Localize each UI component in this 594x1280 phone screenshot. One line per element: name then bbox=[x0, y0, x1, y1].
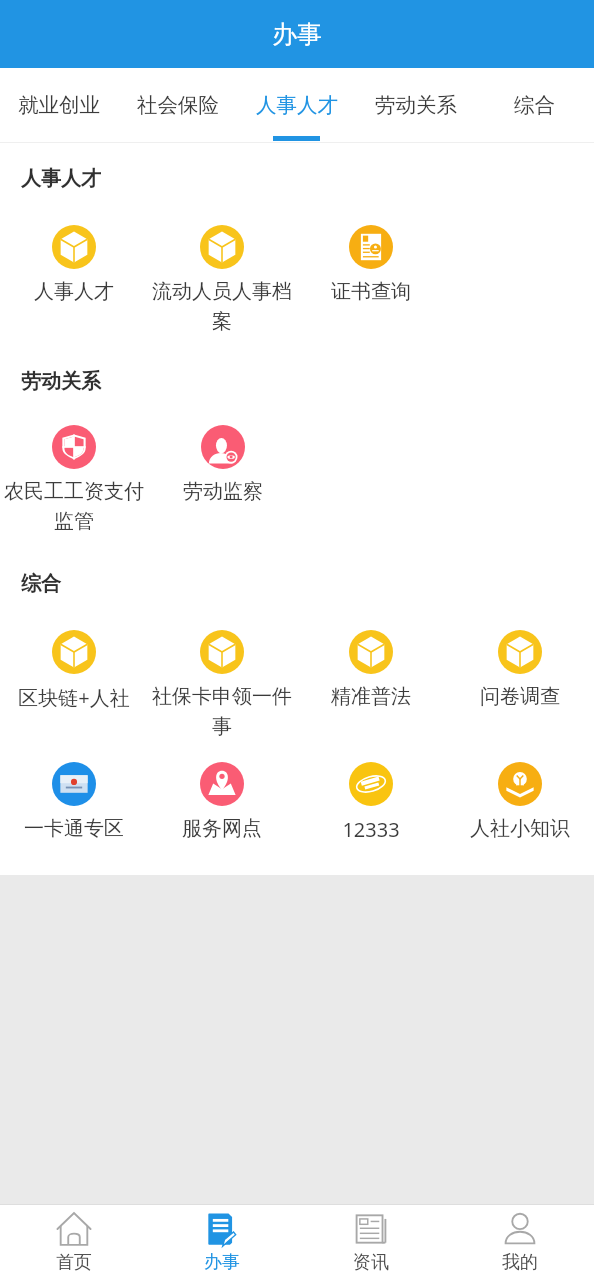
button[interactable]: 就业创业 bbox=[0, 68, 118, 142]
staticText: 劳动关系 bbox=[375, 92, 457, 118]
button[interactable]: 人事人才 bbox=[0, 225, 148, 304]
staticText: 办事 bbox=[204, 1251, 240, 1274]
staticText: 证书查询 bbox=[331, 279, 411, 304]
button[interactable]: 区块链+人社 bbox=[0, 630, 148, 711]
staticText: 流动人员人事档案 bbox=[152, 279, 292, 334]
staticText: 我的 bbox=[502, 1251, 538, 1274]
button[interactable]: 一卡通专区 bbox=[0, 762, 148, 841]
staticText: 社会保险 bbox=[137, 92, 219, 118]
staticText: 劳动监察 bbox=[183, 479, 263, 504]
button[interactable]: 农民工工资支付监管 bbox=[0, 425, 148, 534]
staticText: 综合 bbox=[514, 92, 555, 118]
staticText: 服务网点 bbox=[182, 816, 262, 841]
button[interactable]: 问卷调查 bbox=[445, 630, 594, 709]
staticText: 人事人才 bbox=[21, 166, 101, 191]
staticText: 就业创业 bbox=[18, 92, 100, 118]
staticText: 精准普法 bbox=[331, 684, 411, 709]
button[interactable]: 12333 bbox=[296, 762, 445, 843]
button[interactable]: 流动人员人事档案 bbox=[148, 225, 296, 334]
button[interactable]: 服务网点 bbox=[148, 762, 296, 841]
button[interactable]: 人事人才 bbox=[237, 68, 356, 142]
staticText: 首页 bbox=[56, 1251, 92, 1274]
button[interactable]: 资讯 bbox=[296, 1205, 445, 1280]
button[interactable]: 综合 bbox=[475, 68, 594, 142]
staticText: 劳动关系 bbox=[21, 369, 101, 394]
button[interactable]: 首页 bbox=[0, 1205, 148, 1280]
staticText: 人事人才 bbox=[256, 92, 338, 118]
staticText: 人事人才 bbox=[34, 279, 114, 304]
button[interactable]: 劳动关系 bbox=[356, 68, 475, 142]
button[interactable]: 社会保险 bbox=[118, 68, 237, 142]
staticText: 人社小知识 bbox=[470, 816, 570, 841]
button[interactable]: 办事 bbox=[148, 1205, 296, 1280]
staticText: 农民工工资支付监管 bbox=[4, 479, 144, 534]
staticText: 12333 bbox=[342, 816, 400, 843]
staticText: 综合 bbox=[21, 571, 61, 596]
staticText: 问卷调查 bbox=[480, 684, 560, 709]
staticText: 资讯 bbox=[353, 1251, 389, 1274]
staticText: 社保卡申领一件事 bbox=[152, 684, 292, 739]
button[interactable]: 人社小知识 bbox=[445, 762, 594, 841]
button[interactable]: 精准普法 bbox=[296, 630, 445, 709]
button[interactable]: 证书查询 bbox=[296, 225, 445, 304]
staticText: 一卡通专区 bbox=[24, 816, 124, 841]
staticText: 办事 bbox=[272, 19, 322, 50]
button[interactable]: 社保卡申领一件事 bbox=[148, 630, 296, 739]
button[interactable]: 我的 bbox=[445, 1205, 594, 1280]
button[interactable]: 劳动监察 bbox=[148, 425, 297, 504]
staticText: 区块链+人社 bbox=[18, 684, 130, 711]
